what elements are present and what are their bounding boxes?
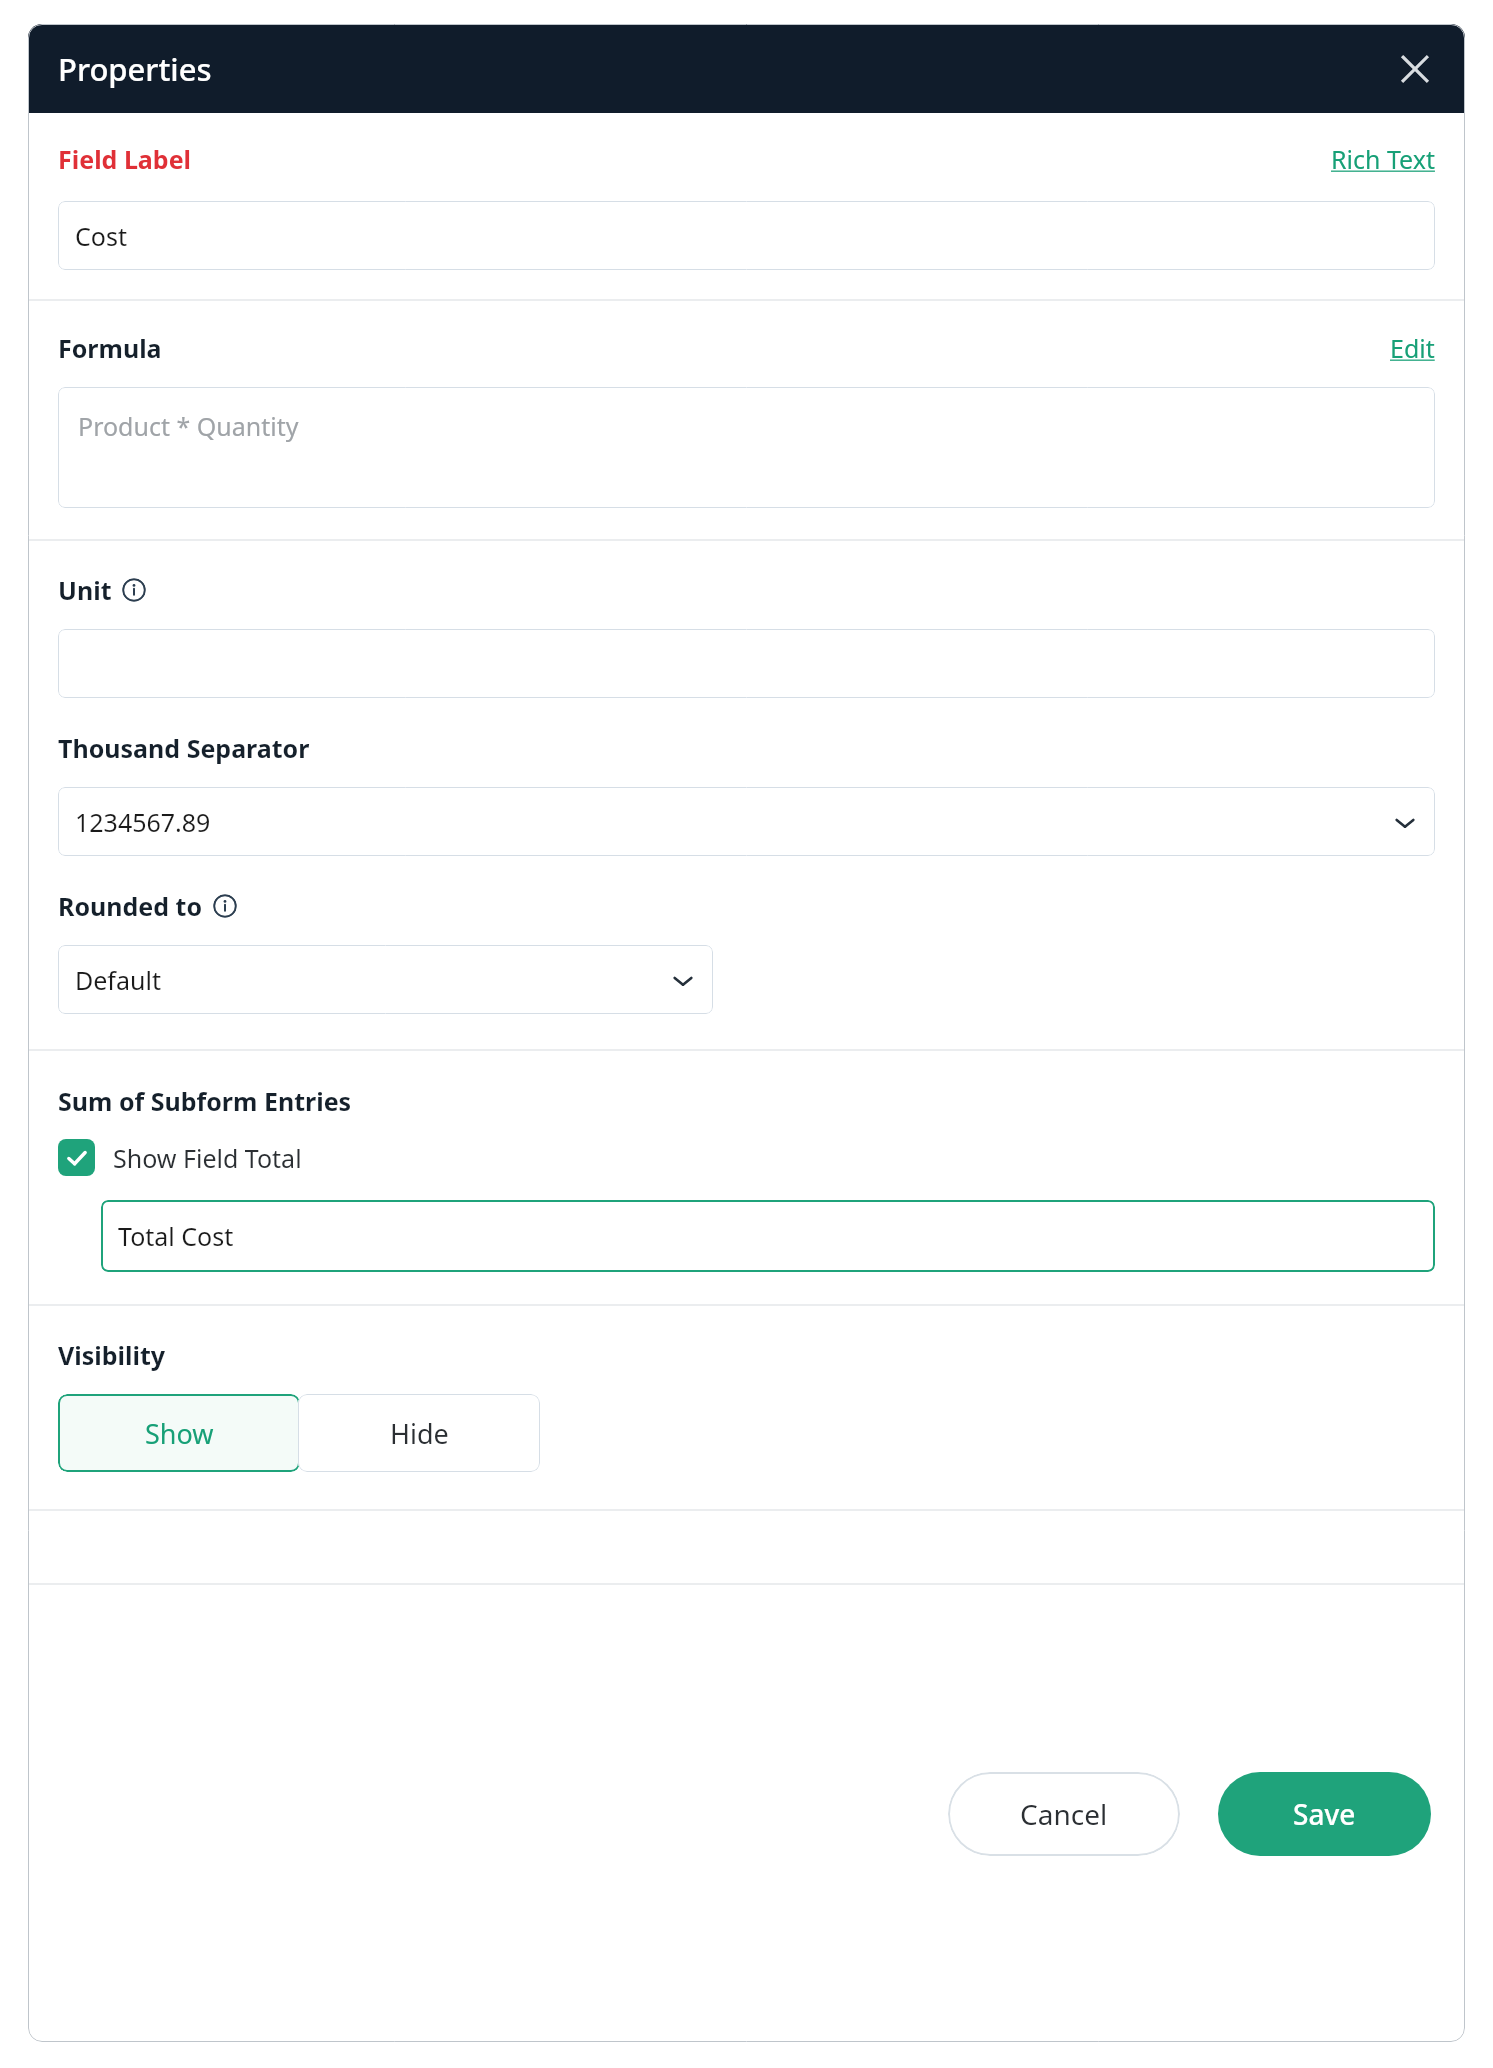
staticText: Cancel	[1020, 1795, 1108, 1833]
button[interactable]: Default	[58, 945, 713, 1014]
button[interactable]: Edit	[1390, 331, 1435, 365]
button[interactable]: Cost	[58, 201, 1435, 270]
staticText: Show Field Total	[113, 1141, 302, 1175]
staticText: Properties	[58, 48, 212, 90]
button[interactable]: Hide	[298, 1394, 540, 1472]
staticText: 1234567.89	[75, 805, 1392, 839]
staticText: Field Label	[58, 142, 192, 176]
staticText: Edit	[1390, 331, 1435, 365]
button[interactable]: Show Field Total	[58, 1139, 302, 1176]
staticText: Default	[75, 963, 670, 997]
staticText: Save	[1293, 1795, 1356, 1833]
button[interactable]: Unit information	[122, 578, 146, 602]
staticText: Cost	[75, 219, 1418, 253]
staticText: Visibility	[58, 1338, 166, 1372]
button[interactable]: Product * Quantity	[58, 387, 1435, 508]
staticText: Total Cost	[118, 1219, 1418, 1253]
button[interactable]: Save	[1218, 1772, 1431, 1856]
button[interactable]: Total Cost	[101, 1200, 1435, 1272]
button[interactable]: Show	[58, 1394, 300, 1472]
staticText: Hide	[390, 1415, 449, 1452]
staticText: Thousand Separator	[58, 731, 310, 765]
staticText: Rich Text	[1331, 142, 1435, 176]
staticText: Show	[145, 1415, 214, 1452]
button[interactable]: Rounding information	[213, 894, 237, 918]
button[interactable]: Cancel	[948, 1772, 1180, 1856]
staticText: Unit	[58, 573, 112, 607]
button[interactable]: Rich Text	[1331, 142, 1435, 176]
button[interactable]: Close	[1387, 41, 1443, 97]
button[interactable]	[58, 629, 1435, 698]
staticText: Product * Quantity	[78, 409, 299, 443]
staticText: Formula	[58, 331, 162, 365]
staticText: Rounded to	[58, 889, 203, 923]
button[interactable]: 1234567.89	[58, 787, 1435, 856]
staticText: Sum of Subform Entries	[58, 1084, 352, 1118]
